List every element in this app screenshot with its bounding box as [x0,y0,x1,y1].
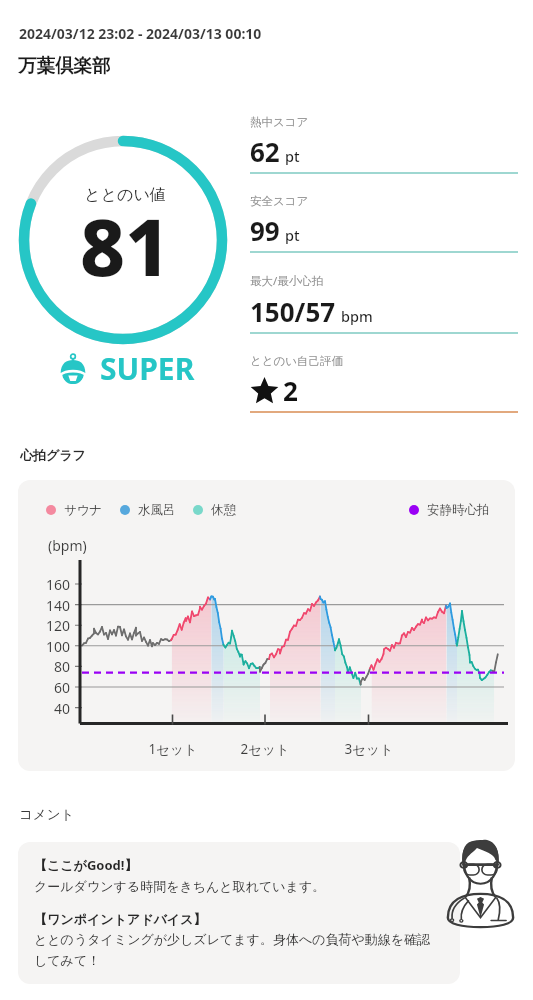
staticText: 3セット [341,740,397,758]
staticText: bpm [341,306,373,326]
staticText: 120 [32,616,70,635]
staticText: (bpm) [48,536,87,555]
staticText: 81 [0,193,250,299]
staticText: SUPER [100,348,195,389]
staticText: 水風呂 [138,502,176,518]
staticText: 150/57 [250,294,336,329]
staticText: 80 [32,657,70,676]
staticText: 安静時心拍 [427,502,490,518]
staticText: 60 [32,678,70,697]
staticText: 40 [32,699,70,718]
staticText: 休憩 [211,502,236,518]
staticText: 2024/03/12 23:02 - 2024/03/13 00:10 [19,24,262,43]
staticText: 心拍グラフ [20,447,86,463]
staticText: サウナ [64,502,103,518]
staticText: 1セット [145,740,201,758]
staticText: ととのい値 [0,185,250,205]
staticText: 160 [32,575,70,594]
staticText: 【ワンポイントアドバイス】 [34,911,207,927]
staticText: 99 [250,213,280,248]
staticText: 2セット [237,740,293,758]
staticText: ととのうタイミングが少しズレてます。身体への負荷や動線を確認 してみて！ [34,931,431,969]
staticText: クールダウンする時間をきちんと取れています。 [34,878,326,894]
staticText: 安全スコア [250,194,309,208]
staticText: 万葉倶楽部 [18,54,111,77]
staticText: 140 [32,596,70,615]
staticText: 62 [250,134,280,169]
staticText: 【ここがGood!】 [34,856,138,874]
staticText: 2 [283,373,298,408]
staticText: ととのい自己評価 [250,354,344,368]
staticText: pt [285,225,300,245]
staticText: 最大/最小心拍 [250,273,324,289]
staticText: 熱中スコア [250,115,309,129]
staticText: pt [285,146,300,166]
staticText: コメント [19,806,75,823]
staticText: 100 [32,637,70,656]
